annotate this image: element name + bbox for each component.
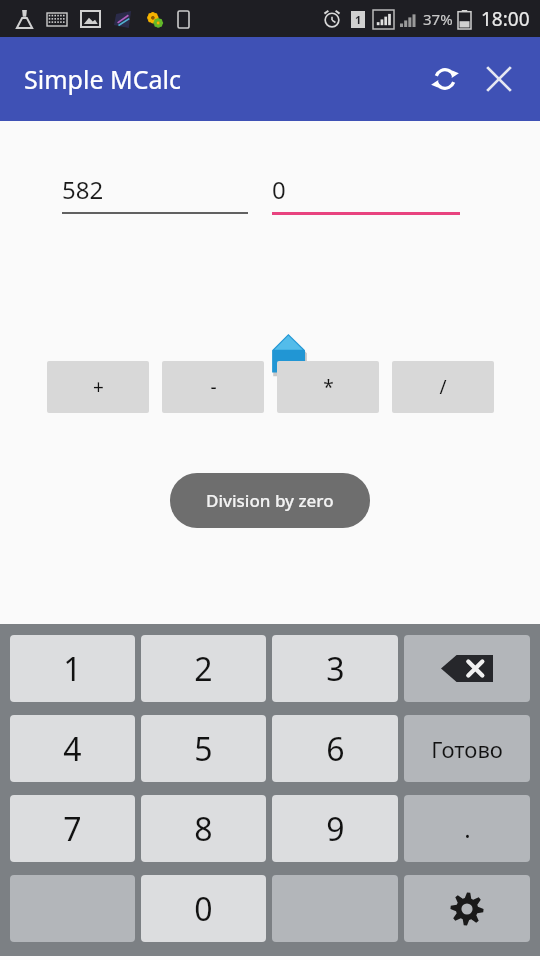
button[interactable]: Готово: [404, 715, 530, 782]
staticText: 4: [63, 727, 82, 771]
button[interactable]: Division by zero: [170, 473, 370, 528]
button[interactable]: .: [404, 795, 530, 862]
staticText: -: [210, 374, 217, 400]
staticText: 5: [194, 727, 213, 771]
button[interactable]: /: [392, 361, 494, 413]
button[interactable]: Refresh: [418, 52, 472, 106]
staticText: Division by zero: [206, 489, 334, 512]
button[interactable]: 5: [141, 715, 266, 782]
staticText: 37%: [423, 9, 453, 29]
staticText: 582: [62, 173, 104, 206]
staticText: 2: [194, 647, 213, 691]
staticText: 1: [63, 647, 82, 691]
staticText: 0: [194, 887, 213, 931]
button[interactable]: Close: [472, 52, 526, 106]
staticText: +: [93, 374, 104, 400]
staticText: .: [464, 812, 471, 845]
button[interactable]: 9: [272, 795, 398, 862]
staticText: 0: [272, 173, 286, 206]
button[interactable]: +: [47, 361, 149, 413]
button[interactable]: 3: [272, 635, 398, 702]
staticText: 9: [326, 807, 345, 851]
button[interactable]: *: [277, 361, 379, 413]
staticText: *: [323, 374, 334, 400]
button[interactable]: 8: [141, 795, 266, 862]
button[interactable]: -: [162, 361, 264, 413]
button[interactable]: 6: [272, 715, 398, 782]
button[interactable]: Settings: [404, 875, 530, 942]
button[interactable]: 4: [10, 715, 135, 782]
staticText: 6: [326, 727, 345, 771]
button[interactable]: 7: [10, 795, 135, 862]
staticText: 18:00: [481, 6, 530, 32]
button[interactable]: 1: [10, 635, 135, 702]
button[interactable]: 2: [141, 635, 266, 702]
staticText: Simple MCalc: [24, 62, 181, 96]
button[interactable]: Backspace: [404, 635, 530, 702]
button[interactable]: 0: [141, 875, 266, 942]
staticText: 8: [194, 807, 213, 851]
staticText: 3: [326, 647, 345, 691]
staticText: 7: [63, 807, 82, 851]
staticText: /: [439, 374, 447, 400]
staticText: Готово: [431, 734, 503, 764]
staticText: 1: [355, 12, 362, 27]
